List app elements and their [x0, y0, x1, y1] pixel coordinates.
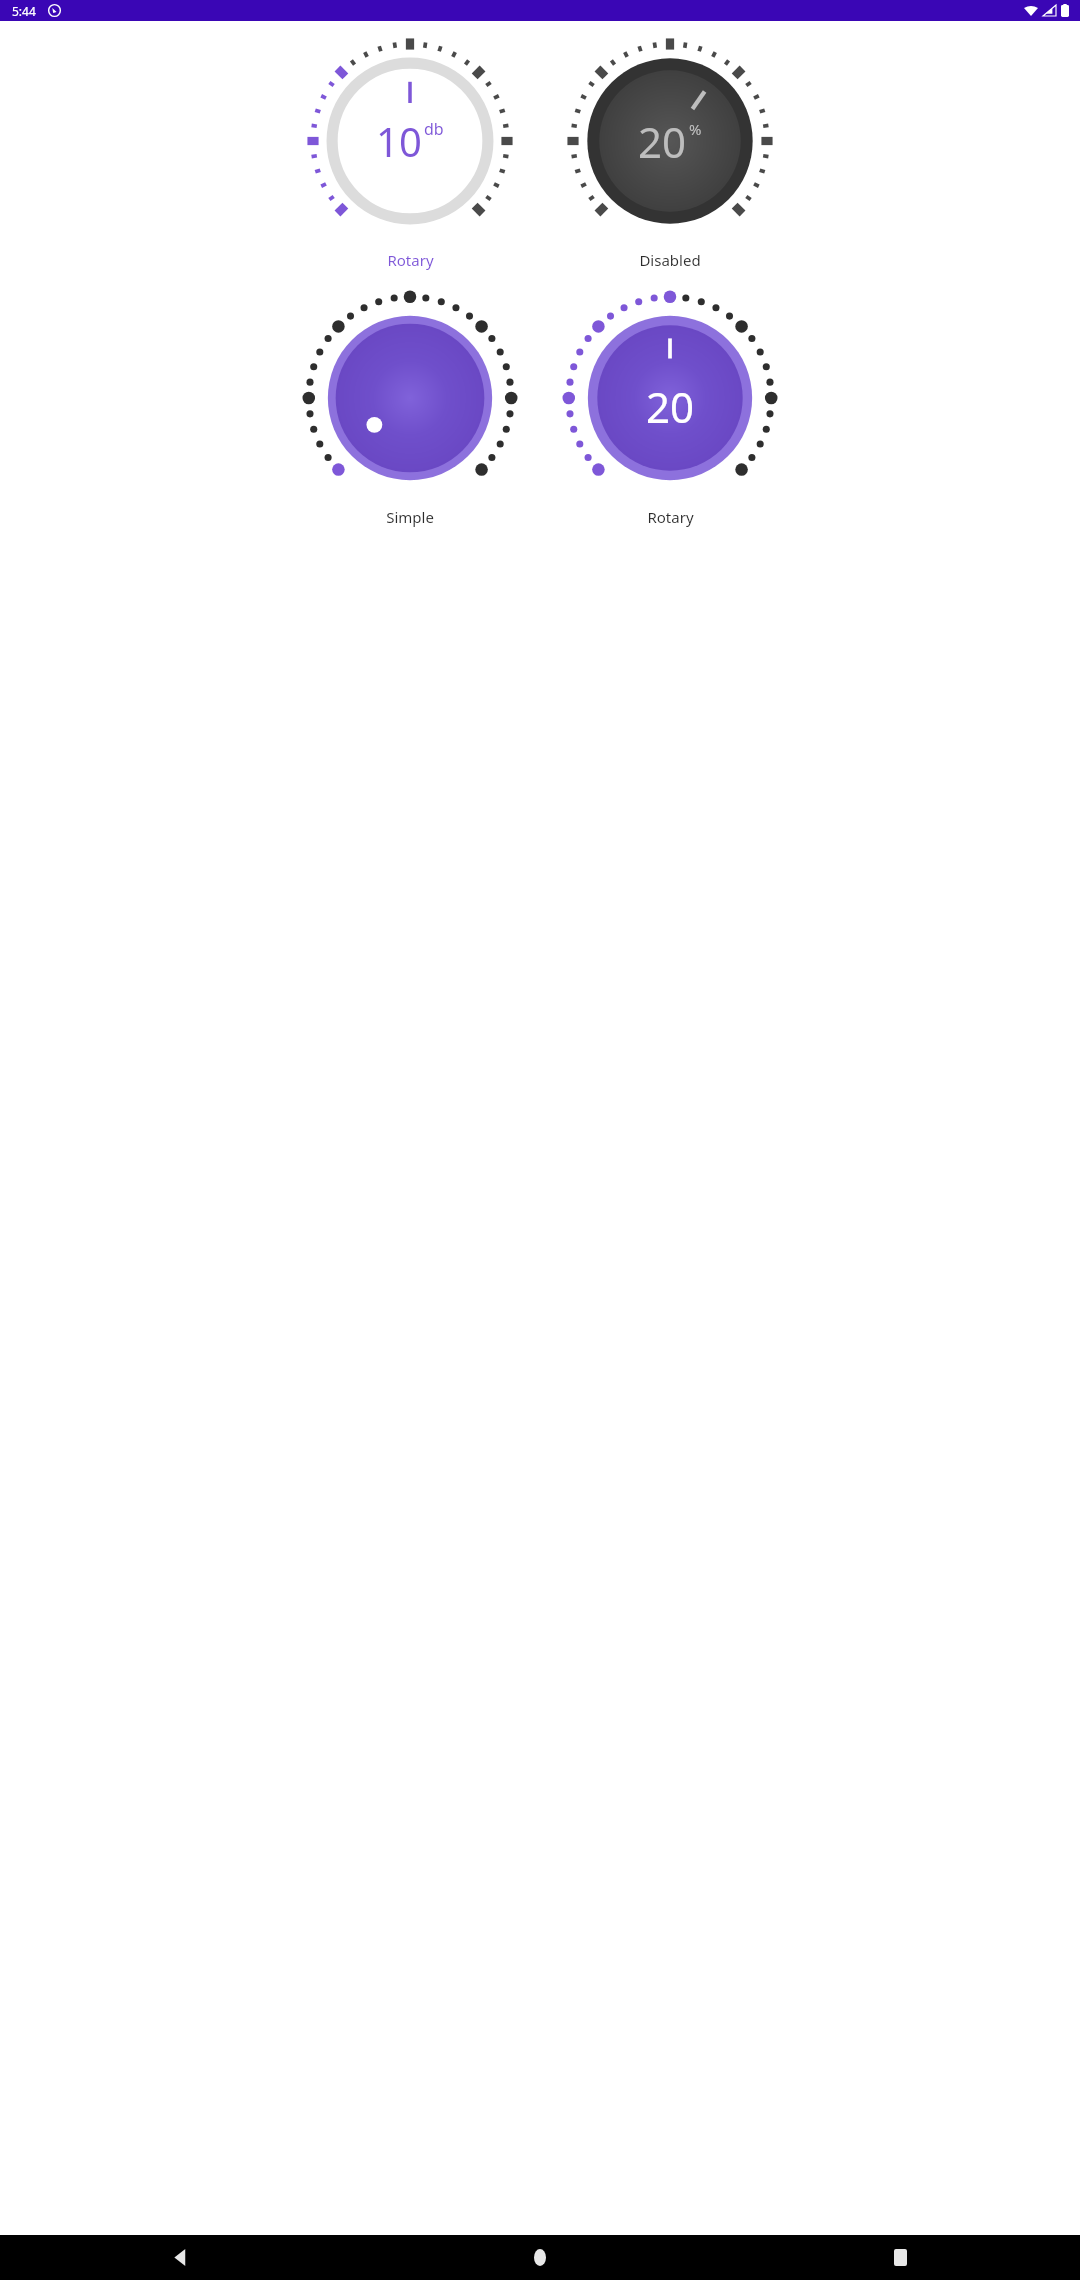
button[interactable]: Rotary [555, 292, 785, 527]
staticText: Simple [386, 507, 434, 527]
staticText: 5:44 [12, 3, 36, 19]
button[interactable]: Home [360, 2235, 720, 2280]
staticText: Disabled [639, 250, 701, 270]
button[interactable]: Recent apps [720, 2235, 1080, 2280]
staticText: 20 [646, 378, 695, 435]
staticText: Rotary [387, 250, 434, 270]
staticText: % [689, 119, 702, 139]
button[interactable]: Disabled [555, 35, 785, 270]
button[interactable]: Back [0, 2235, 360, 2280]
staticText: db [424, 118, 444, 140]
button[interactable]: Rotary [295, 35, 525, 270]
button[interactable]: Simple knob [304, 292, 516, 504]
staticText: 20 [638, 113, 687, 170]
button[interactable]: Simple [295, 292, 525, 527]
staticText: Rotary [647, 507, 694, 527]
staticText: 10 [376, 114, 422, 168]
